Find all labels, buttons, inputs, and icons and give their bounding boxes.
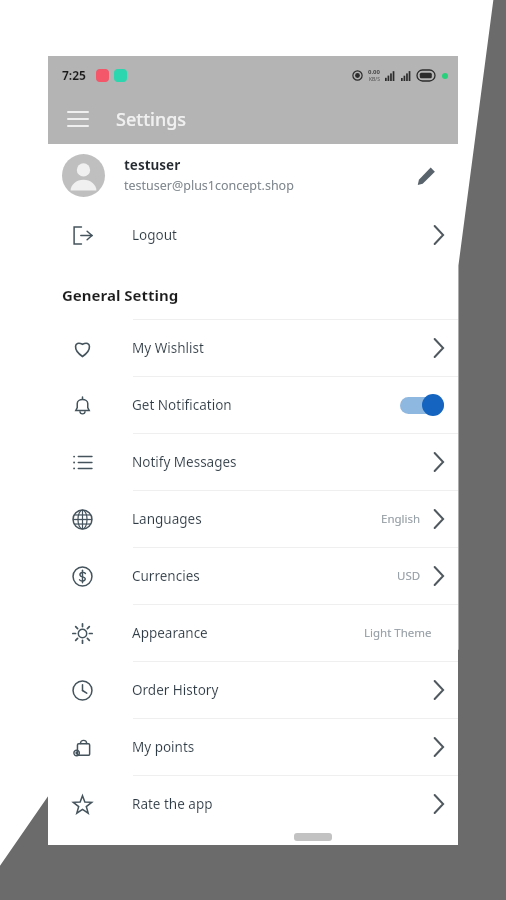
- button[interactable]: My Wishlist: [48, 320, 458, 376]
- button[interactable]: Get Notification: [48, 377, 458, 433]
- staticText: Notify Messages: [132, 453, 237, 471]
- button[interactable]: Logout: [48, 206, 458, 263]
- staticText: My points: [132, 738, 195, 756]
- staticText: Rate the app: [132, 795, 213, 813]
- staticText: KB/S: [369, 76, 380, 83]
- button[interactable]: [400, 394, 444, 416]
- button[interactable]: testuser: [48, 144, 458, 206]
- staticText: Get Notification: [132, 396, 232, 414]
- staticText: Settings: [116, 107, 187, 132]
- staticText: testuser: [124, 156, 181, 174]
- button[interactable]: Currencies: [48, 548, 458, 604]
- staticText: My Wishlist: [132, 339, 204, 357]
- staticText: testuser@plus1concept.shop: [124, 177, 294, 194]
- button[interactable]: Rate the app: [48, 776, 458, 832]
- button[interactable]: Notify Messages: [48, 434, 458, 490]
- staticText: Languages: [132, 510, 202, 528]
- staticText: 7:25: [62, 67, 86, 83]
- staticText: 0.00: [368, 68, 380, 76]
- staticText: Appearance: [132, 624, 208, 642]
- button[interactable]: Appearance: [48, 605, 458, 661]
- staticText: Light Theme: [364, 625, 432, 641]
- staticText: Order History: [132, 681, 219, 699]
- button[interactable]: Languages: [48, 491, 458, 547]
- staticText: General Setting: [62, 285, 179, 305]
- button[interactable]: Order History: [48, 662, 458, 718]
- staticText: Currencies: [132, 567, 200, 585]
- staticText: USD: [397, 568, 421, 584]
- button[interactable]: My points: [48, 719, 458, 775]
- button[interactable]: Edit profile: [408, 157, 444, 193]
- staticText: Logout: [132, 226, 177, 244]
- button[interactable]: Open navigation menu: [56, 97, 100, 141]
- staticText: English: [381, 511, 421, 527]
